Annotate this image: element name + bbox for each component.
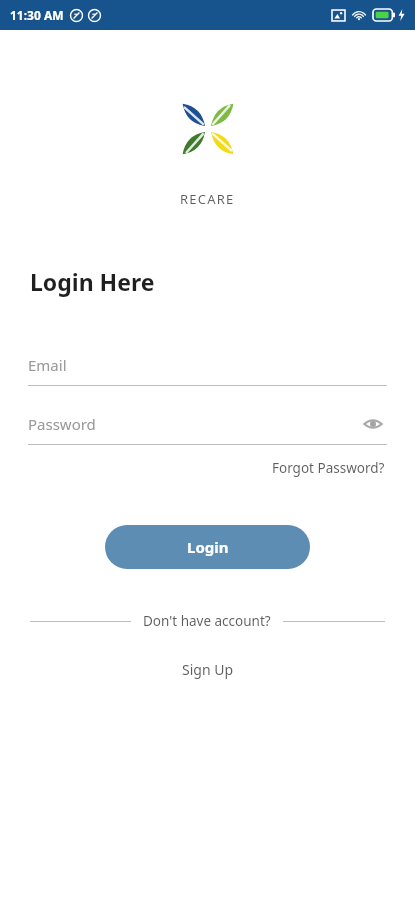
button[interactable]: Show password — [359, 410, 387, 438]
staticText: Email — [28, 355, 387, 375]
button[interactable]: Password — [28, 404, 387, 445]
staticText: Login Here — [30, 266, 155, 297]
button[interactable]: Email — [28, 345, 387, 386]
button[interactable]: Forgot Password? — [270, 455, 387, 481]
staticText: 11:30 AM — [10, 7, 64, 23]
staticText: Password — [28, 414, 359, 434]
staticText: Don't have account? — [143, 612, 271, 630]
staticText: RECARE — [180, 190, 235, 208]
button[interactable]: Login — [105, 525, 310, 569]
staticText: Sign Up — [182, 660, 234, 679]
staticText: Forgot Password? — [272, 459, 385, 477]
staticText: Login — [187, 537, 229, 557]
button[interactable]: Sign Up — [170, 656, 246, 683]
